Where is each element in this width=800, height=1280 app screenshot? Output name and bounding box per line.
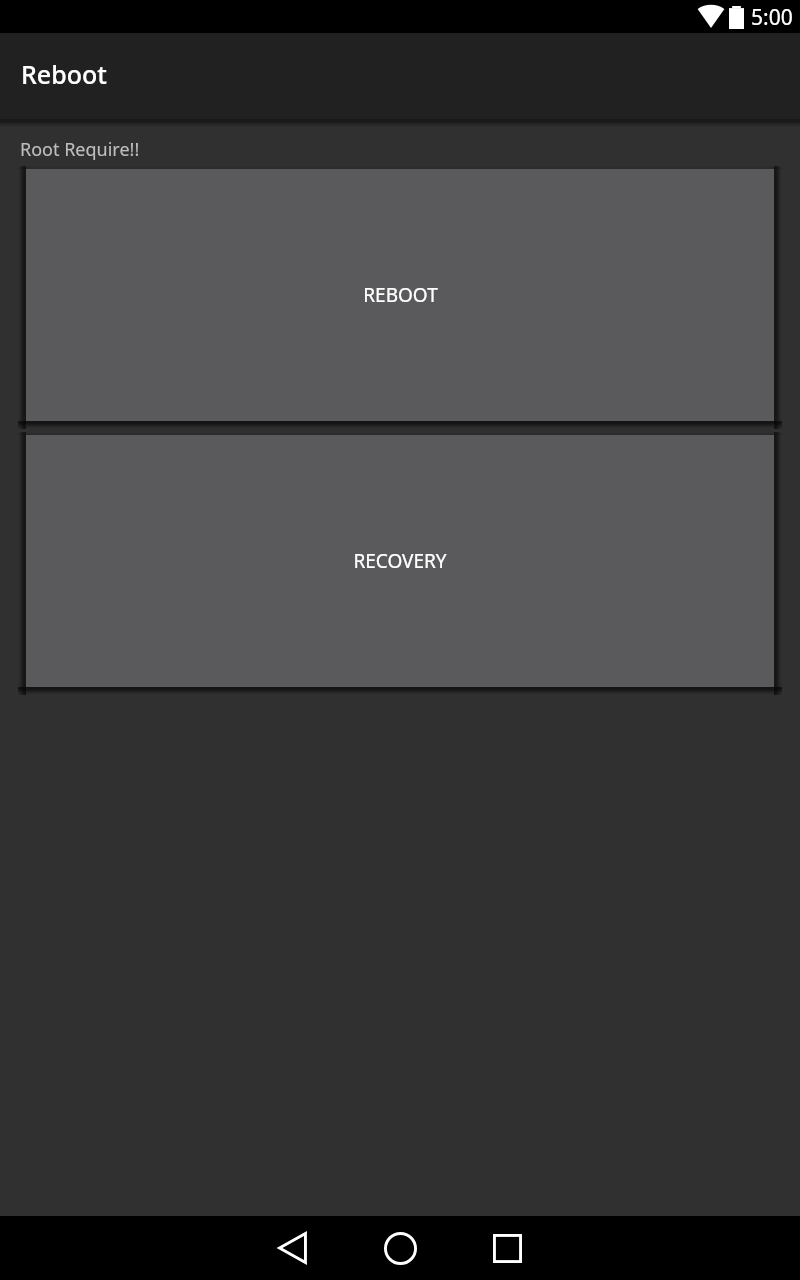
staticText: Reboot — [21, 57, 107, 91]
staticText: Root Require!! — [20, 137, 140, 162]
staticText: REBOOT — [363, 282, 438, 308]
staticText: RECOVERY — [353, 548, 447, 574]
other: Battery full — [729, 6, 744, 29]
staticText: 5:00 — [751, 3, 793, 32]
button[interactable]: Back — [256, 1216, 332, 1280]
button[interactable]: Recent apps — [468, 1216, 544, 1280]
button[interactable]: REBOOT — [18, 169, 782, 421]
button[interactable]: Home — [362, 1216, 438, 1280]
other: Wi-Fi connected — [698, 6, 724, 28]
button[interactable]: RECOVERY — [18, 435, 782, 687]
